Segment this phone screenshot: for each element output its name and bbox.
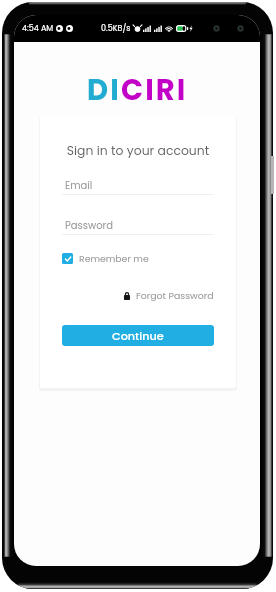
button[interactable]: Remember me [62, 252, 149, 265]
staticText: 4:54 AM [22, 23, 54, 34]
staticText: Sign in to your account [62, 142, 214, 159]
staticText: CIRI [121, 70, 188, 111]
staticText: Email [65, 178, 93, 192]
staticText: Forgot Password [136, 289, 214, 302]
staticText: Continue [112, 328, 164, 344]
button[interactable]: Email [62, 178, 214, 195]
staticText: Password [65, 218, 114, 232]
button[interactable]: Continue [62, 325, 214, 346]
staticText: 0.5KB/s [101, 23, 131, 34]
button[interactable]: Forgot Password [123, 289, 214, 302]
button[interactable]: Password [62, 218, 214, 235]
staticText: Remember me [79, 252, 149, 265]
staticText: DI [87, 70, 121, 111]
